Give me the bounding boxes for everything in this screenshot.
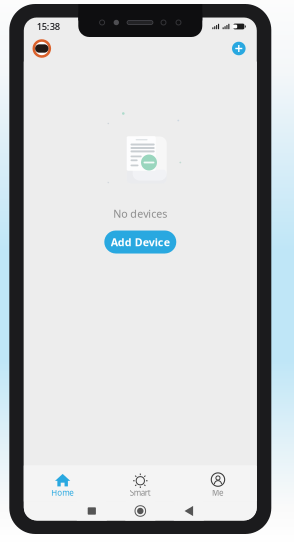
button[interactable]: Me (179, 465, 257, 501)
staticText: Smart (130, 487, 151, 498)
button[interactable]: Add Device (104, 230, 176, 253)
button[interactable]: Smart (101, 465, 179, 501)
button[interactable]: Home (125, 501, 155, 520)
staticText: Add Device (111, 235, 170, 249)
button[interactable]: Home (24, 465, 101, 501)
button[interactable]: Recents (77, 501, 107, 520)
staticText: No devices (113, 206, 167, 221)
button[interactable]: Add device (224, 35, 254, 61)
staticText: 15:38 (37, 20, 60, 33)
button[interactable]: Back (174, 501, 204, 520)
staticText: Home (51, 487, 74, 498)
button[interactable]: Profile (27, 35, 57, 61)
staticText: Me (212, 487, 224, 498)
